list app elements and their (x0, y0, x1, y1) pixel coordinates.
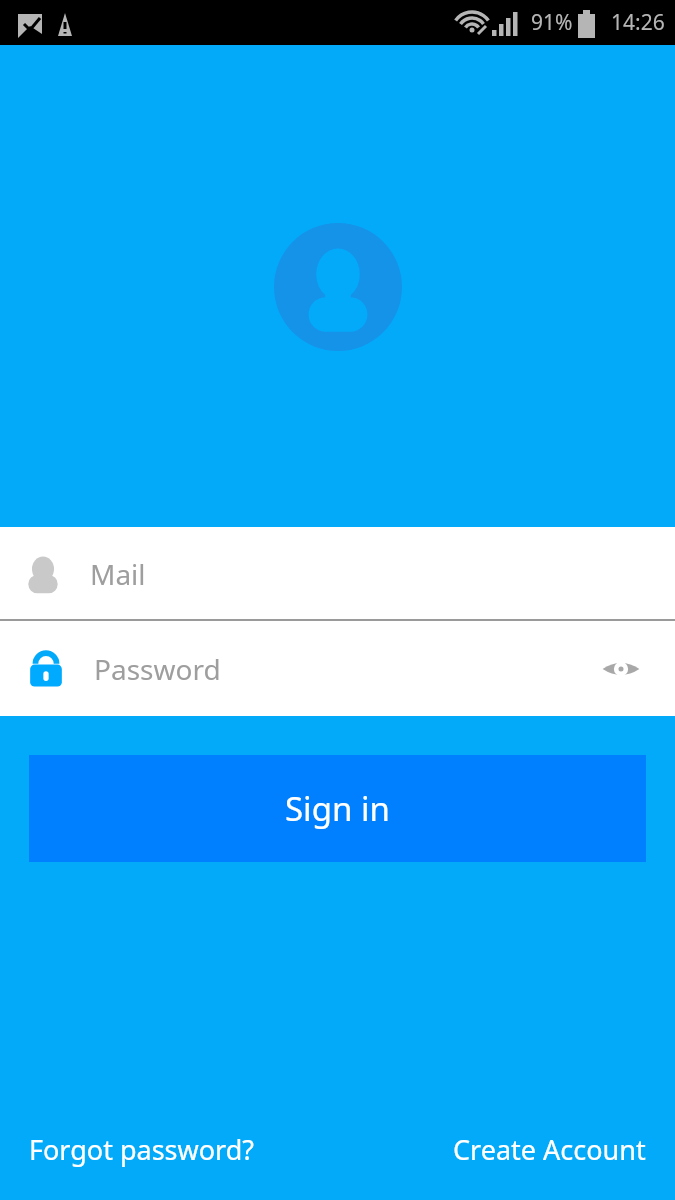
staticText: Forgot password? (29, 1131, 255, 1168)
staticText: Sign in (285, 786, 390, 831)
button[interactable]: Sign in (29, 755, 646, 862)
staticText: Create Account (453, 1131, 646, 1168)
staticText: 14:26 (611, 8, 665, 37)
button[interactable]: Forgot password? (29, 1131, 255, 1168)
button[interactable]: Password (0, 621, 675, 716)
button[interactable]: Show password (595, 643, 647, 695)
staticText: 91% (531, 8, 573, 37)
staticText: Mail (90, 555, 146, 593)
button[interactable]: Mail (0, 527, 675, 621)
button[interactable]: Create Account (453, 1131, 646, 1168)
staticText: Password (94, 650, 221, 688)
